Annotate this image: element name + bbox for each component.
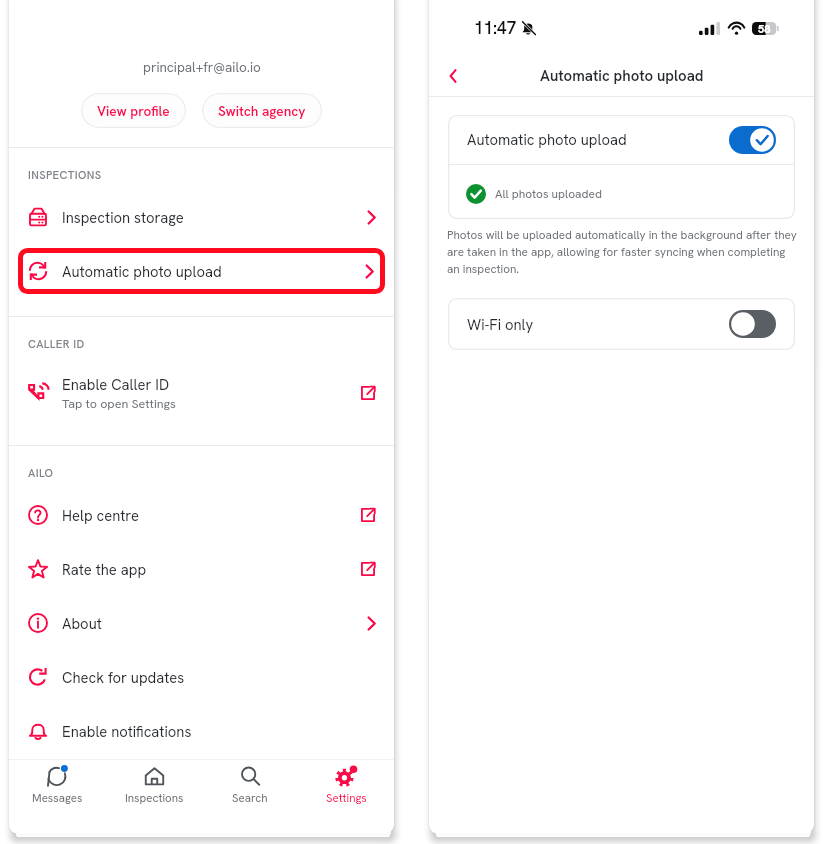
other: Open Enable Caller ID	[360, 385, 376, 401]
button[interactable]: Messages	[9, 760, 106, 834]
button[interactable]: Settings	[298, 760, 394, 834]
staticText: Inspections	[125, 790, 184, 805]
button[interactable]: Inspection storage	[9, 190, 394, 244]
other: Open Inspection storage	[367, 210, 376, 225]
staticText: Wi-Fi only	[467, 315, 729, 334]
button[interactable]: Wi-Fi only	[448, 298, 795, 350]
staticText: Enable notifications	[62, 722, 192, 741]
other: Open About	[367, 616, 376, 631]
staticText: Search	[232, 790, 268, 805]
button[interactable]: About	[9, 596, 394, 650]
button[interactable]: Rate the app	[9, 542, 394, 596]
staticText: View profile	[97, 102, 170, 120]
staticText: Check for updates	[62, 668, 185, 687]
staticText: About	[62, 614, 102, 633]
staticText: Automatic photo upload	[62, 262, 365, 281]
button[interactable]: Enable notifications	[9, 704, 394, 758]
staticText: INSPECTIONS	[28, 168, 102, 183]
button[interactable]: Automatic photo upload	[18, 248, 385, 294]
staticText: Messages	[32, 790, 83, 805]
staticText: AILO	[28, 466, 54, 481]
staticText: Help centre	[62, 506, 139, 525]
staticText: All photos uploaded	[495, 186, 602, 202]
staticText: Rate the app	[62, 560, 147, 579]
staticText: principal+fr@ailo.io	[143, 58, 261, 76]
staticText: Settings	[326, 790, 367, 805]
button[interactable]: Check for updates	[9, 650, 394, 704]
button[interactable]: Switch agency	[202, 93, 322, 128]
staticText: Automatic photo upload	[467, 130, 729, 149]
button[interactable]: Help centre	[9, 488, 394, 542]
button[interactable]: Back	[435, 58, 471, 94]
staticText: Inspection storage	[62, 208, 184, 227]
staticText: Photos will be uploaded automatically in…	[447, 227, 798, 277]
staticText: Enable Caller ID	[62, 375, 170, 394]
staticText: CALLER ID	[28, 337, 85, 352]
button[interactable]: Search	[202, 760, 298, 834]
button[interactable]: View profile	[81, 93, 186, 128]
staticText: Tap to open Settings	[62, 395, 176, 411]
other: Open Rate the app	[360, 561, 376, 577]
other: Open Help centre	[360, 507, 376, 523]
button[interactable]: Automatic photo upload	[448, 115, 795, 164]
button[interactable]: Inspections	[106, 760, 202, 834]
staticText: Automatic photo upload	[540, 66, 704, 86]
staticText: Switch agency	[218, 102, 306, 120]
staticText: 11:47	[474, 17, 517, 39]
staticText: 58	[758, 22, 771, 35]
button[interactable]: Enable Caller ID	[9, 359, 394, 427]
